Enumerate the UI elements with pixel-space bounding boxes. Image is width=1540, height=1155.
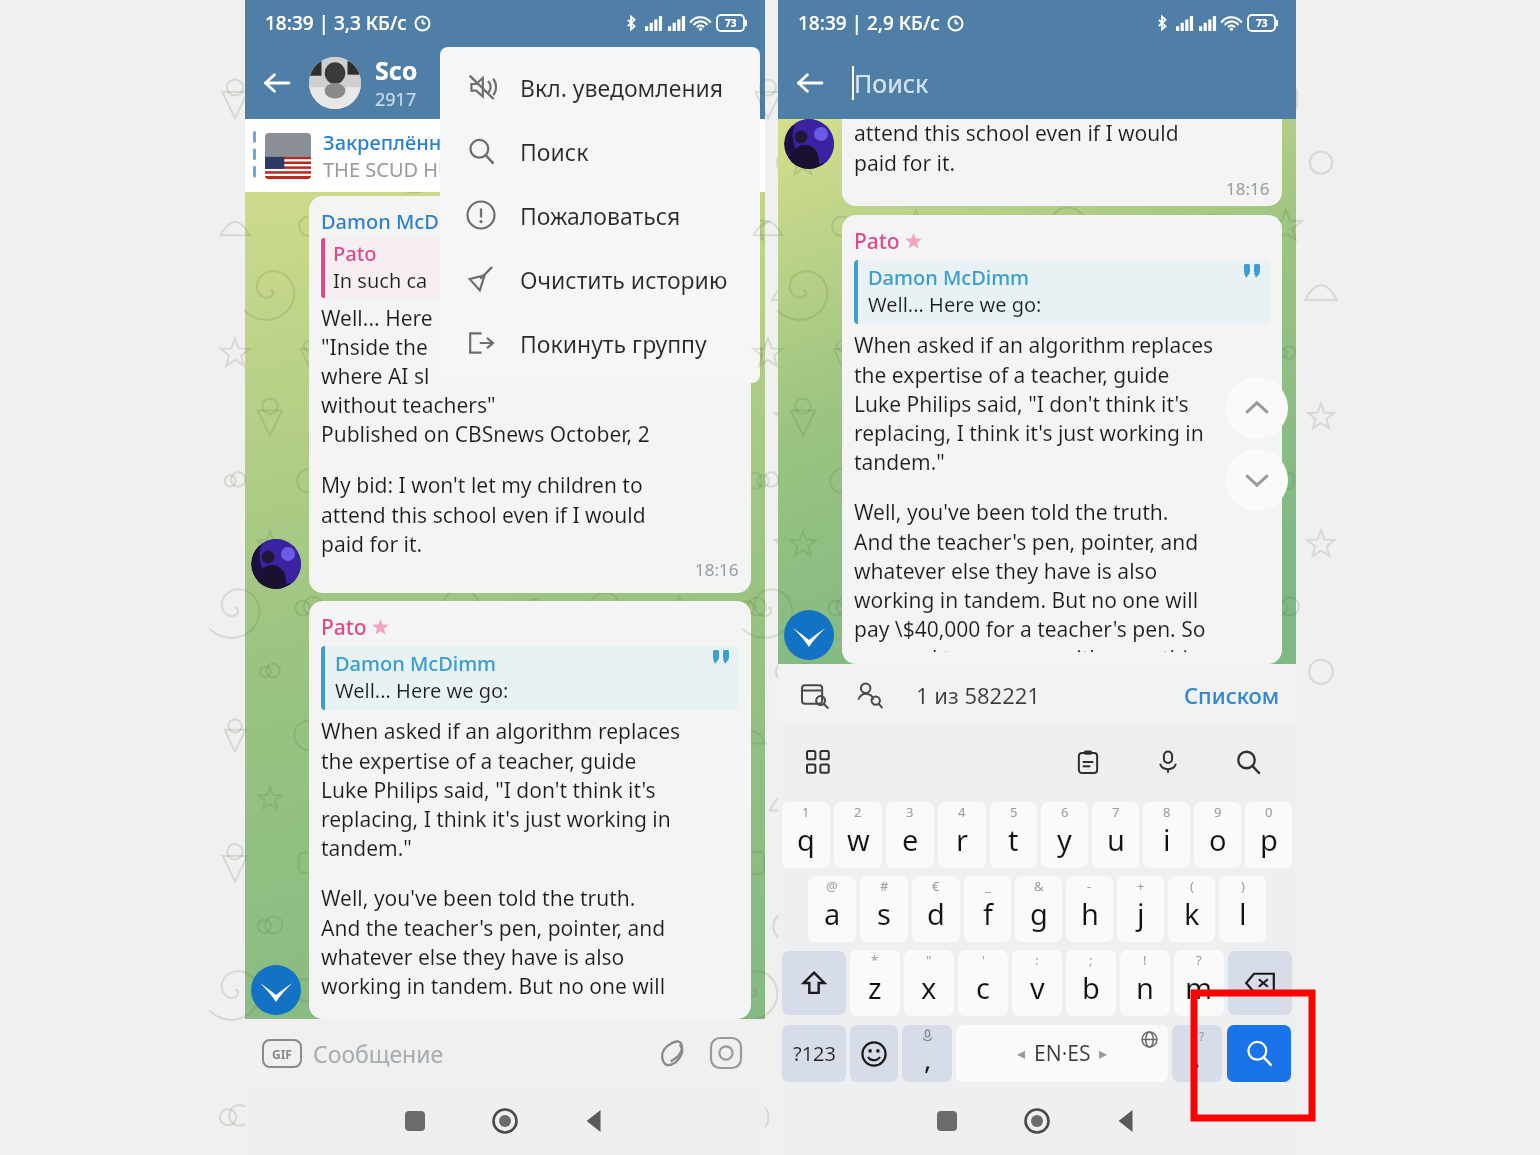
staticText: z: [868, 968, 882, 1007]
button[interactable]: Покинуть группу: [440, 311, 760, 375]
button[interactable]: Очистить историю: [440, 247, 760, 311]
staticText: without teachers": [321, 391, 496, 420]
button[interactable]: 4: [938, 802, 986, 868]
staticText: ?123: [793, 1040, 836, 1067]
staticText: "Inside the: [321, 333, 428, 362]
staticText: 18:39 | 3,3 КБ/с: [265, 10, 407, 36]
staticText: Well... Here we go:: [335, 677, 509, 704]
staticText: 1 из 582221: [916, 680, 1040, 710]
button[interactable]: Пожаловаться: [440, 183, 760, 247]
button[interactable]: 3: [886, 802, 934, 868]
button[interactable]: GIF: [245, 1019, 765, 1087]
staticText: 0: [1265, 803, 1273, 821]
button[interactable]: ;: [1066, 950, 1116, 1016]
button[interactable]: Back: [778, 51, 842, 115]
staticText: :: [1035, 951, 1039, 969]
button[interactable]: 9: [1194, 802, 1241, 868]
staticText: Damon McDimm: [335, 650, 497, 677]
button[interactable]: @: [808, 876, 856, 942]
button[interactable]: ): [1219, 876, 1266, 942]
button[interactable]: Recent apps: [902, 1087, 992, 1155]
button[interactable]: Back: [550, 1087, 640, 1155]
button[interactable]: Previous result: [1226, 377, 1288, 439]
button[interactable]: Space: [956, 1025, 1168, 1082]
button[interactable]: Search: [1227, 1025, 1291, 1082]
button[interactable]: Period: [1172, 1025, 1222, 1082]
button[interactable]: Recent apps: [370, 1087, 460, 1155]
button[interactable]: 0: [1245, 802, 1292, 868]
staticText: (: [1190, 877, 1194, 895]
button[interactable]: ': [958, 950, 1008, 1016]
button[interactable]: &: [1015, 876, 1062, 942]
button[interactable]: 7: [1092, 802, 1139, 868]
button[interactable]: 8: [1143, 802, 1190, 868]
button[interactable]: !: [1120, 950, 1170, 1016]
staticText: 2917: [375, 87, 417, 112]
button[interactable]: [309, 57, 361, 109]
button[interactable]: 2: [834, 802, 882, 868]
staticText: attend this school even if I would paid …: [854, 119, 1179, 177]
staticText: Покинуть группу: [520, 328, 707, 359]
staticText: _: [985, 877, 991, 895]
staticText: r: [956, 820, 968, 859]
staticText: h: [1081, 894, 1099, 933]
button[interactable]: Закреплённое: [245, 119, 765, 192]
button[interactable]: :: [1012, 950, 1062, 1016]
staticText: a: [824, 894, 841, 933]
staticText: k: [1184, 894, 1200, 933]
button[interactable]: +: [1117, 876, 1164, 942]
staticText: x: [921, 968, 937, 1007]
staticText: ?: [1199, 1028, 1205, 1044]
staticText: Damon McDimm: [868, 264, 1030, 291]
button[interactable]: €: [912, 876, 960, 942]
button[interactable]: Search: [1222, 736, 1274, 788]
button[interactable]: Comma: [902, 1025, 952, 1082]
staticText: q: [797, 820, 815, 859]
staticText: Пожаловаться: [520, 200, 681, 231]
button[interactable]: #: [860, 876, 908, 942]
staticText: *: [871, 951, 879, 969]
button[interactable]: Search by member: [846, 672, 892, 718]
button[interactable]: -: [1066, 876, 1113, 942]
button[interactable]: Next result: [1226, 449, 1288, 511]
button[interactable]: Home: [460, 1087, 550, 1155]
button[interactable]: *: [850, 950, 900, 1016]
button[interactable]: Списком: [1168, 672, 1296, 718]
staticText: Поиск: [854, 66, 929, 100]
button[interactable]: Вкл. уведомления: [440, 55, 760, 119]
button[interactable]: attend this school even if I would paid …: [842, 119, 1282, 206]
button[interactable]: (: [1168, 876, 1215, 942]
button[interactable]: Back: [1082, 1087, 1172, 1155]
staticText: ?: [1196, 951, 1202, 969]
button[interactable]: Damon McDimm: [309, 196, 751, 593]
button[interactable]: Поиск: [440, 119, 760, 183]
button[interactable]: Emoji: [850, 1025, 898, 1082]
staticText: v: [1030, 968, 1045, 1007]
staticText: m: [1185, 968, 1213, 1007]
button[interactable]: Voice input: [1142, 736, 1194, 788]
button[interactable]: Pato: [842, 215, 1282, 664]
staticText: €: [932, 877, 940, 895]
button[interactable]: 5: [990, 802, 1037, 868]
button[interactable]: Back: [778, 46, 1296, 119]
button[interactable]: Shift: [782, 951, 846, 1015]
button[interactable]: Backspace: [1228, 951, 1292, 1015]
button[interactable]: Back: [245, 51, 309, 115]
staticText: g: [1030, 894, 1048, 933]
staticText: Pato: [321, 613, 367, 642]
button[interactable]: Search by date: [792, 672, 838, 718]
button[interactable]: Keyboard layouts: [796, 740, 840, 784]
button[interactable]: ?: [1174, 950, 1224, 1016]
button[interactable]: 1: [782, 802, 830, 868]
staticText: d: [927, 894, 945, 933]
button[interactable]: Symbols: [782, 1025, 846, 1082]
button[interactable]: Attach: [649, 1029, 697, 1077]
button[interactable]: Voice message: [697, 1024, 755, 1082]
button[interactable]: _: [964, 876, 1011, 942]
button[interactable]: ": [904, 950, 954, 1016]
button[interactable]: Pato: [309, 601, 751, 1019]
button[interactable]: 6: [1041, 802, 1088, 868]
button[interactable]: Home: [992, 1087, 1082, 1155]
button[interactable]: Clipboard: [1062, 736, 1114, 788]
staticText: Вкл. уведомления: [520, 72, 724, 103]
